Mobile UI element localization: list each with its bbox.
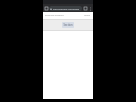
button[interactable]: example heading [43,12,93,19]
staticText: menu [84,14,91,17]
button[interactable]: site.example.com/page [49,6,82,11]
staticText: example heading [45,14,84,17]
button[interactable]: Home [44,6,49,11]
button[interactable]: Tabs [83,6,88,11]
button[interactable]: Section [62,22,74,28]
staticText: Section [63,23,73,27]
staticText: site.example.com/page [53,7,81,10]
button[interactable]: More options [88,6,92,11]
